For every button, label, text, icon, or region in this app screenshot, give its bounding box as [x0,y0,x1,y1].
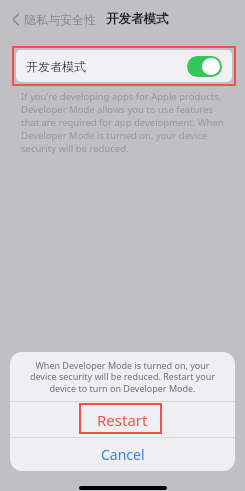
staticText: If you're developing apps for Apple prod… [21,90,226,155]
button[interactable]: Developer Mode toggle, on [187,56,222,77]
staticText: 隐私与安全性 [24,12,96,27]
button[interactable]: Cancel [10,438,235,471]
staticText: Restart [97,410,148,430]
button[interactable]: Restart [10,402,235,437]
staticText: Cancel [101,445,145,464]
staticText: When Developer Mode is turned on, your d… [24,359,221,395]
staticText: 开发者模式 [106,11,169,27]
button[interactable]: 开发者模式 [16,50,232,82]
button[interactable]: Back to 隐私与安全性 [10,8,98,31]
staticText: 开发者模式 [26,59,86,74]
